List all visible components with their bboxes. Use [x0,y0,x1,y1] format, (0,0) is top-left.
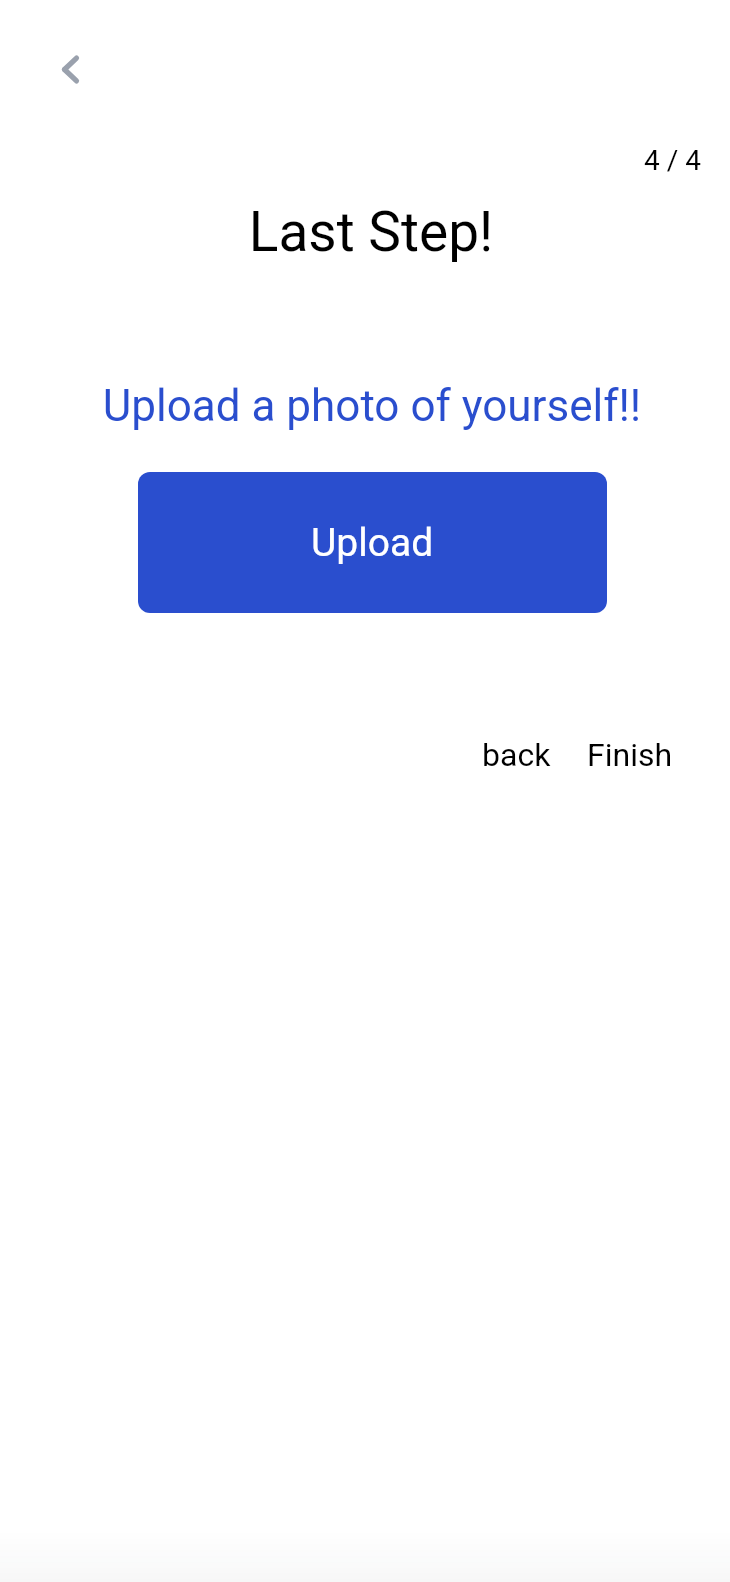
button[interactable]: back [478,728,555,782]
staticText: Upload a photo of yourself!! [7,380,730,432]
staticText: 4 / 4 [644,144,701,177]
staticText: Upload [311,520,434,566]
button[interactable]: Upload [138,472,607,613]
staticText: Last Step! [6,200,730,264]
staticText: Finish [587,736,673,774]
staticText: back [482,736,551,774]
button[interactable]: Finish [583,728,677,782]
button[interactable]: Back [35,35,105,105]
